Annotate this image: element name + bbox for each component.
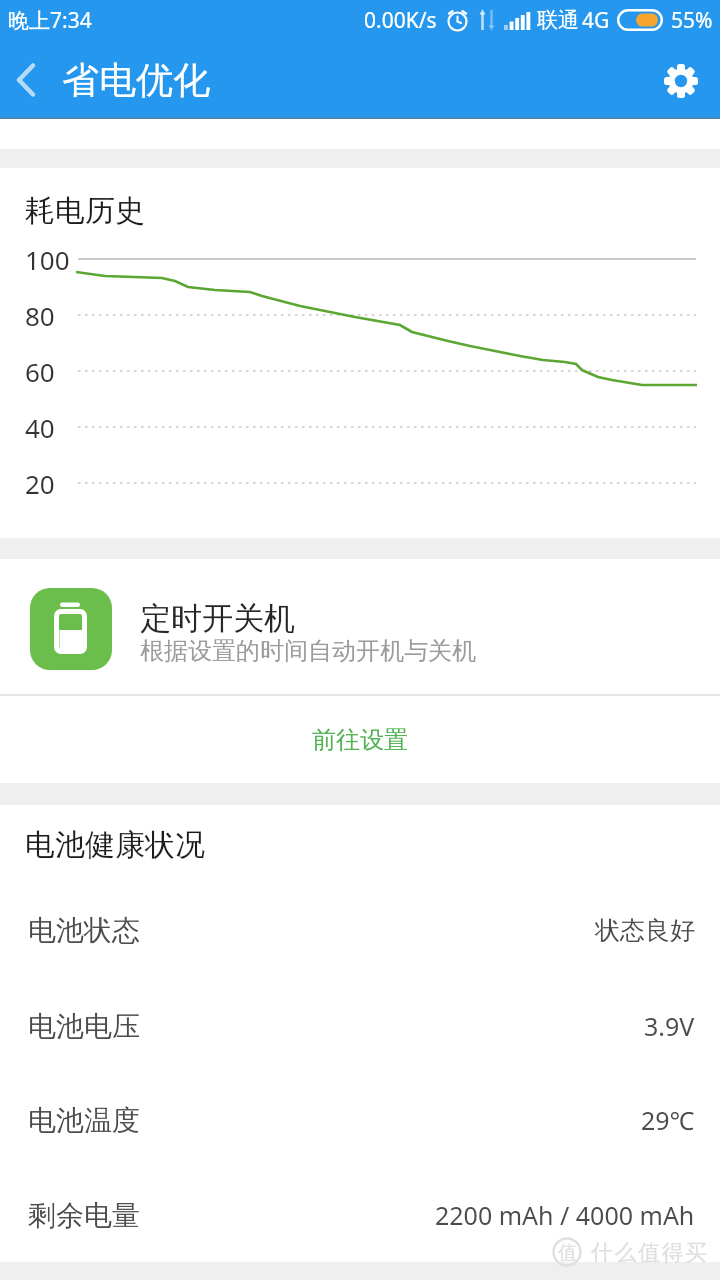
staticText: 状态良好 xyxy=(595,915,695,946)
staticText: 电池温度 xyxy=(28,1103,140,1138)
staticText: 定时开关机 xyxy=(140,599,295,638)
button[interactable] xyxy=(655,55,707,107)
button[interactable]: 剩余电量 xyxy=(0,1168,720,1262)
staticText: 电池健康状况 xyxy=(25,826,205,864)
staticText: 根据设置的时间自动开机与关机 xyxy=(140,636,476,666)
staticText: 耗电历史 xyxy=(25,192,145,230)
staticText: 4G xyxy=(582,6,610,35)
button[interactable]: 定时开关机 xyxy=(0,559,720,694)
staticText: 80 xyxy=(25,298,55,333)
button[interactable]: 前往设置 xyxy=(0,696,720,783)
staticText: 省电优化 xyxy=(62,57,210,104)
staticText: 3.9V xyxy=(644,1009,695,1043)
button[interactable]: 电池温度 xyxy=(0,1073,720,1167)
staticText: 电池状态 xyxy=(28,913,140,948)
staticText: 值 xyxy=(558,1241,577,1265)
staticText: 电池电压 xyxy=(28,1009,140,1044)
staticText: 什么值得买 xyxy=(591,1239,709,1267)
button[interactable]: 电池电压 xyxy=(0,979,720,1073)
staticText: 20 xyxy=(25,466,55,501)
staticText: 100 xyxy=(25,242,70,277)
staticText: 剩余电量 xyxy=(28,1198,140,1233)
staticText: 60 xyxy=(25,354,55,389)
staticText: 55% xyxy=(671,6,713,35)
button[interactable] xyxy=(0,52,53,108)
staticText: 前往设置 xyxy=(312,725,408,755)
staticText: 2200 mAh / 4000 mAh xyxy=(435,1198,695,1232)
staticText: 29℃ xyxy=(641,1103,695,1137)
button[interactable]: 电池状态 xyxy=(0,883,720,977)
staticText: 40 xyxy=(25,410,55,445)
staticText: 0.00K/s xyxy=(364,6,437,35)
staticText: 联通 xyxy=(537,7,579,33)
staticText: 晚上7:34 xyxy=(8,6,92,35)
